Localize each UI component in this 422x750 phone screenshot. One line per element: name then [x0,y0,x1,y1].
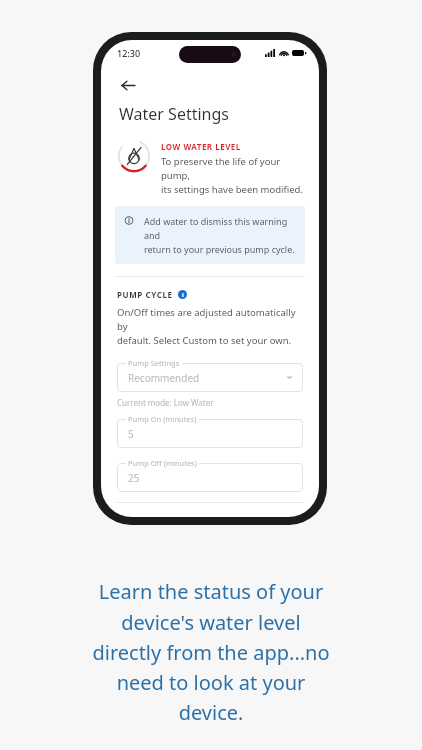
staticText: TEST PUMP [117,516,167,517]
staticText: 25 [128,471,140,485]
staticText: Learn the status of your device's water … [0,578,422,725]
button[interactable] [117,419,303,448]
button[interactable] [117,463,303,492]
button[interactable]: Back [115,72,141,98]
staticText: On/Off times are adjusted automatically … [117,306,303,347]
staticText: To preserve the life of your pump, its s… [161,155,305,196]
staticText: Recommended [128,371,200,385]
staticText: Water Settings [119,103,229,125]
staticText: LOW WATER LEVEL [161,141,241,152]
staticText: i [182,291,184,299]
staticText: Add water to dismiss this warning and re… [144,215,295,255]
staticText: Pump Off (minutes) [128,458,197,468]
button[interactable]: Pump cycle info [178,290,187,299]
staticText: 12:30 [117,47,141,59]
staticText: PUMP CYCLE [117,289,173,300]
button[interactable] [117,363,303,392]
staticText: Pump On (minutes) [128,414,197,424]
staticText: 5 [128,427,134,441]
staticText: Current mode: Low Water [117,397,214,408]
staticText: Pump Settings [128,358,180,368]
